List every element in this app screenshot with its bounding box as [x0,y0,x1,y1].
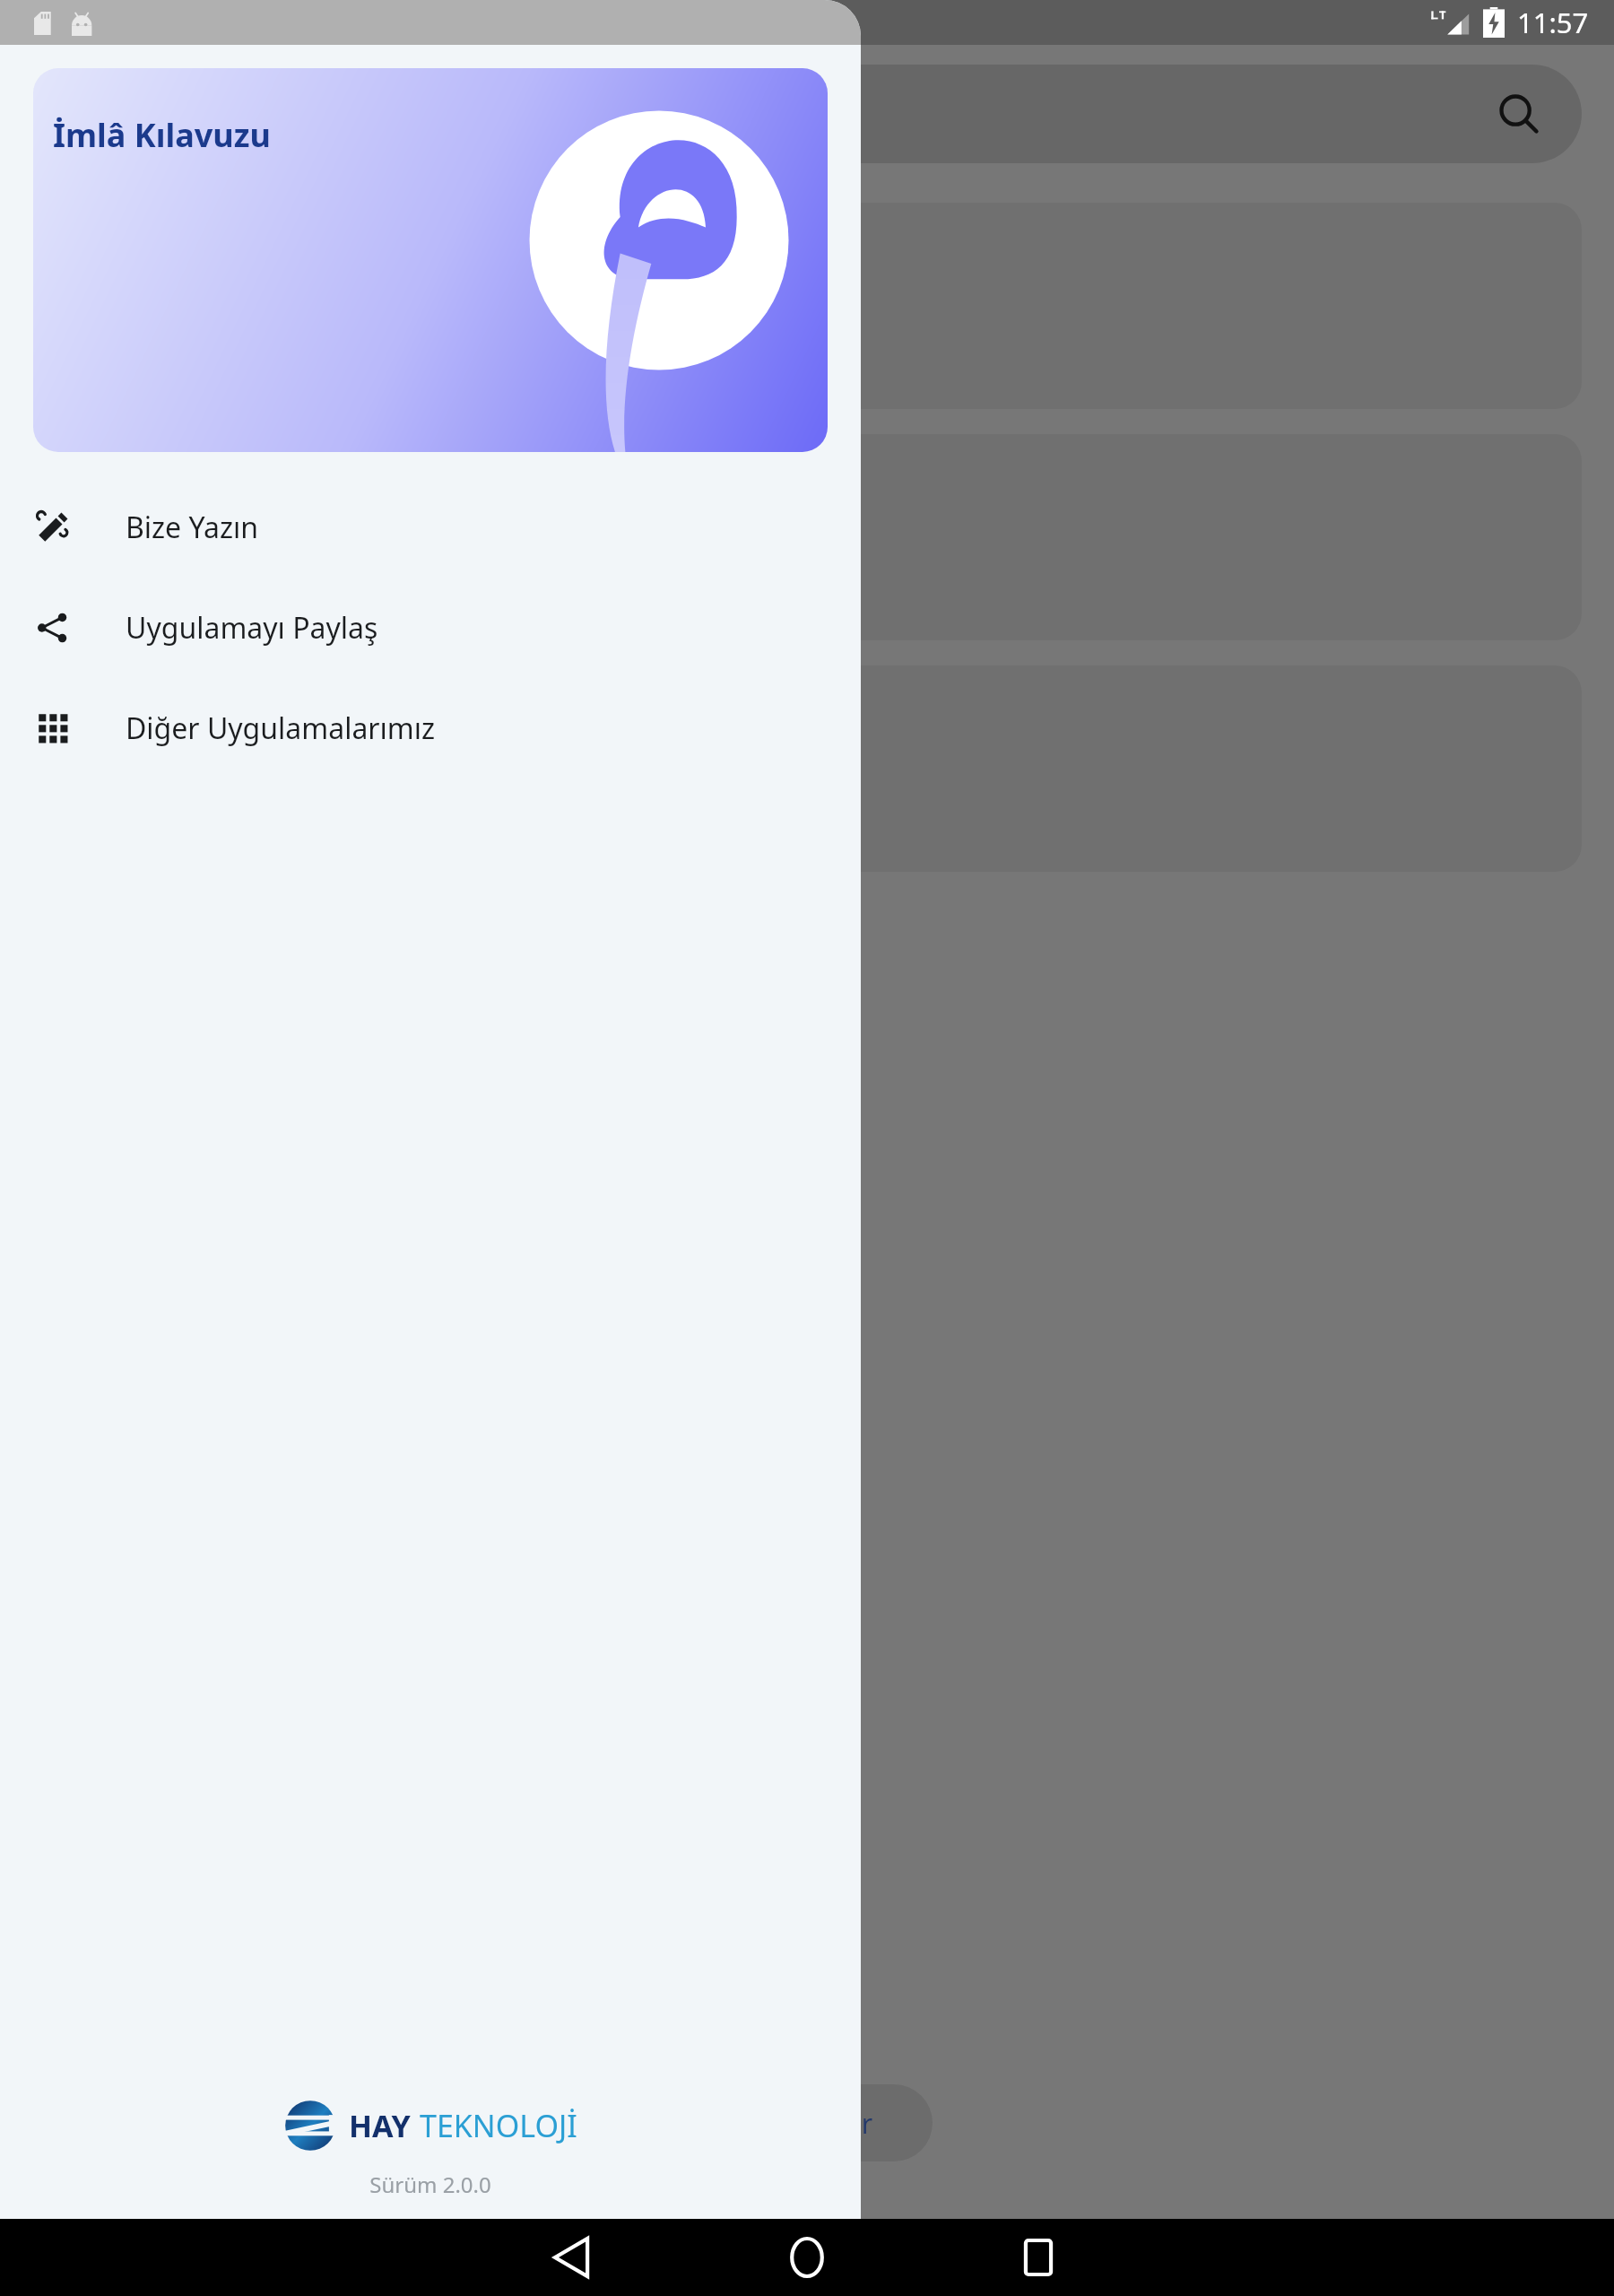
staticText: 11:57 [1517,4,1589,41]
staticText: İmlâ Kılavuzu [53,113,271,157]
button[interactable] [32,665,1582,872]
staticText: Uygulamayı Paylaş [126,608,378,648]
button[interactable]: Ara [32,65,1582,163]
staticText: Sürüm 2.0.0 [369,2170,491,2199]
button[interactable]: Diğer Uygulamalarımız [0,678,861,778]
other: Ara [1496,91,1542,137]
staticText: Bize Yazın [126,508,259,547]
staticText: Hepsini Gör [724,2105,873,2142]
button[interactable]: İmlâ Kılavuzu [33,68,828,452]
button[interactable]: Uygulamayı Paylaş [0,578,861,678]
staticText: HAY [349,2105,411,2146]
button[interactable]: Bize Yazın [0,477,861,578]
staticText: Diğer Uygulamalarımız [126,709,436,748]
staticText: Güvenilir tek bir kaynak [74,497,392,536]
staticText: TEKNOLOJİ [420,2105,577,2146]
button[interactable]: Sesli olarak arama yapın [32,203,1582,409]
button[interactable]: Güvenilir tek bir kaynak [32,434,1582,640]
staticText: Sesli olarak arama yapın [74,265,400,305]
button[interactable]: Hepsini Gör [664,2084,933,2161]
